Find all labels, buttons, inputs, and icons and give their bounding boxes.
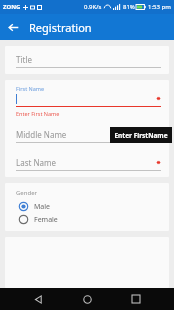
staticText: Gender [16, 189, 38, 197]
staticText: 0.9K/s [84, 3, 102, 11]
button[interactable]: Title [5, 46, 169, 74]
staticText: First Name [16, 85, 45, 92]
button[interactable]: Back [0, 14, 26, 40]
staticText: Enter First Name [16, 110, 60, 117]
button[interactable]: Middle Name [5, 121, 169, 149]
staticText: Female [34, 215, 58, 225]
staticText: ZONG [3, 3, 21, 11]
button[interactable]: Male [5, 200, 169, 213]
staticText: Last Name [16, 157, 57, 168]
button[interactable]: Last Name [5, 149, 169, 177]
button[interactable]: Female [5, 213, 169, 226]
button[interactable]: First Name [5, 80, 169, 121]
button[interactable]: Back [27, 288, 49, 310]
staticText: Title [16, 54, 32, 65]
button[interactable]: Home [76, 288, 98, 310]
button[interactable]: Recent apps [125, 288, 147, 310]
staticText: Middle Name [16, 129, 67, 140]
staticText: Registration [29, 20, 92, 35]
staticText: 1:53 pm [148, 3, 171, 11]
button[interactable]: Enter FirstName [110, 127, 172, 143]
staticText: Enter FirstName [114, 131, 168, 140]
staticText: Male [34, 202, 51, 212]
staticText: 81% [123, 3, 135, 11]
